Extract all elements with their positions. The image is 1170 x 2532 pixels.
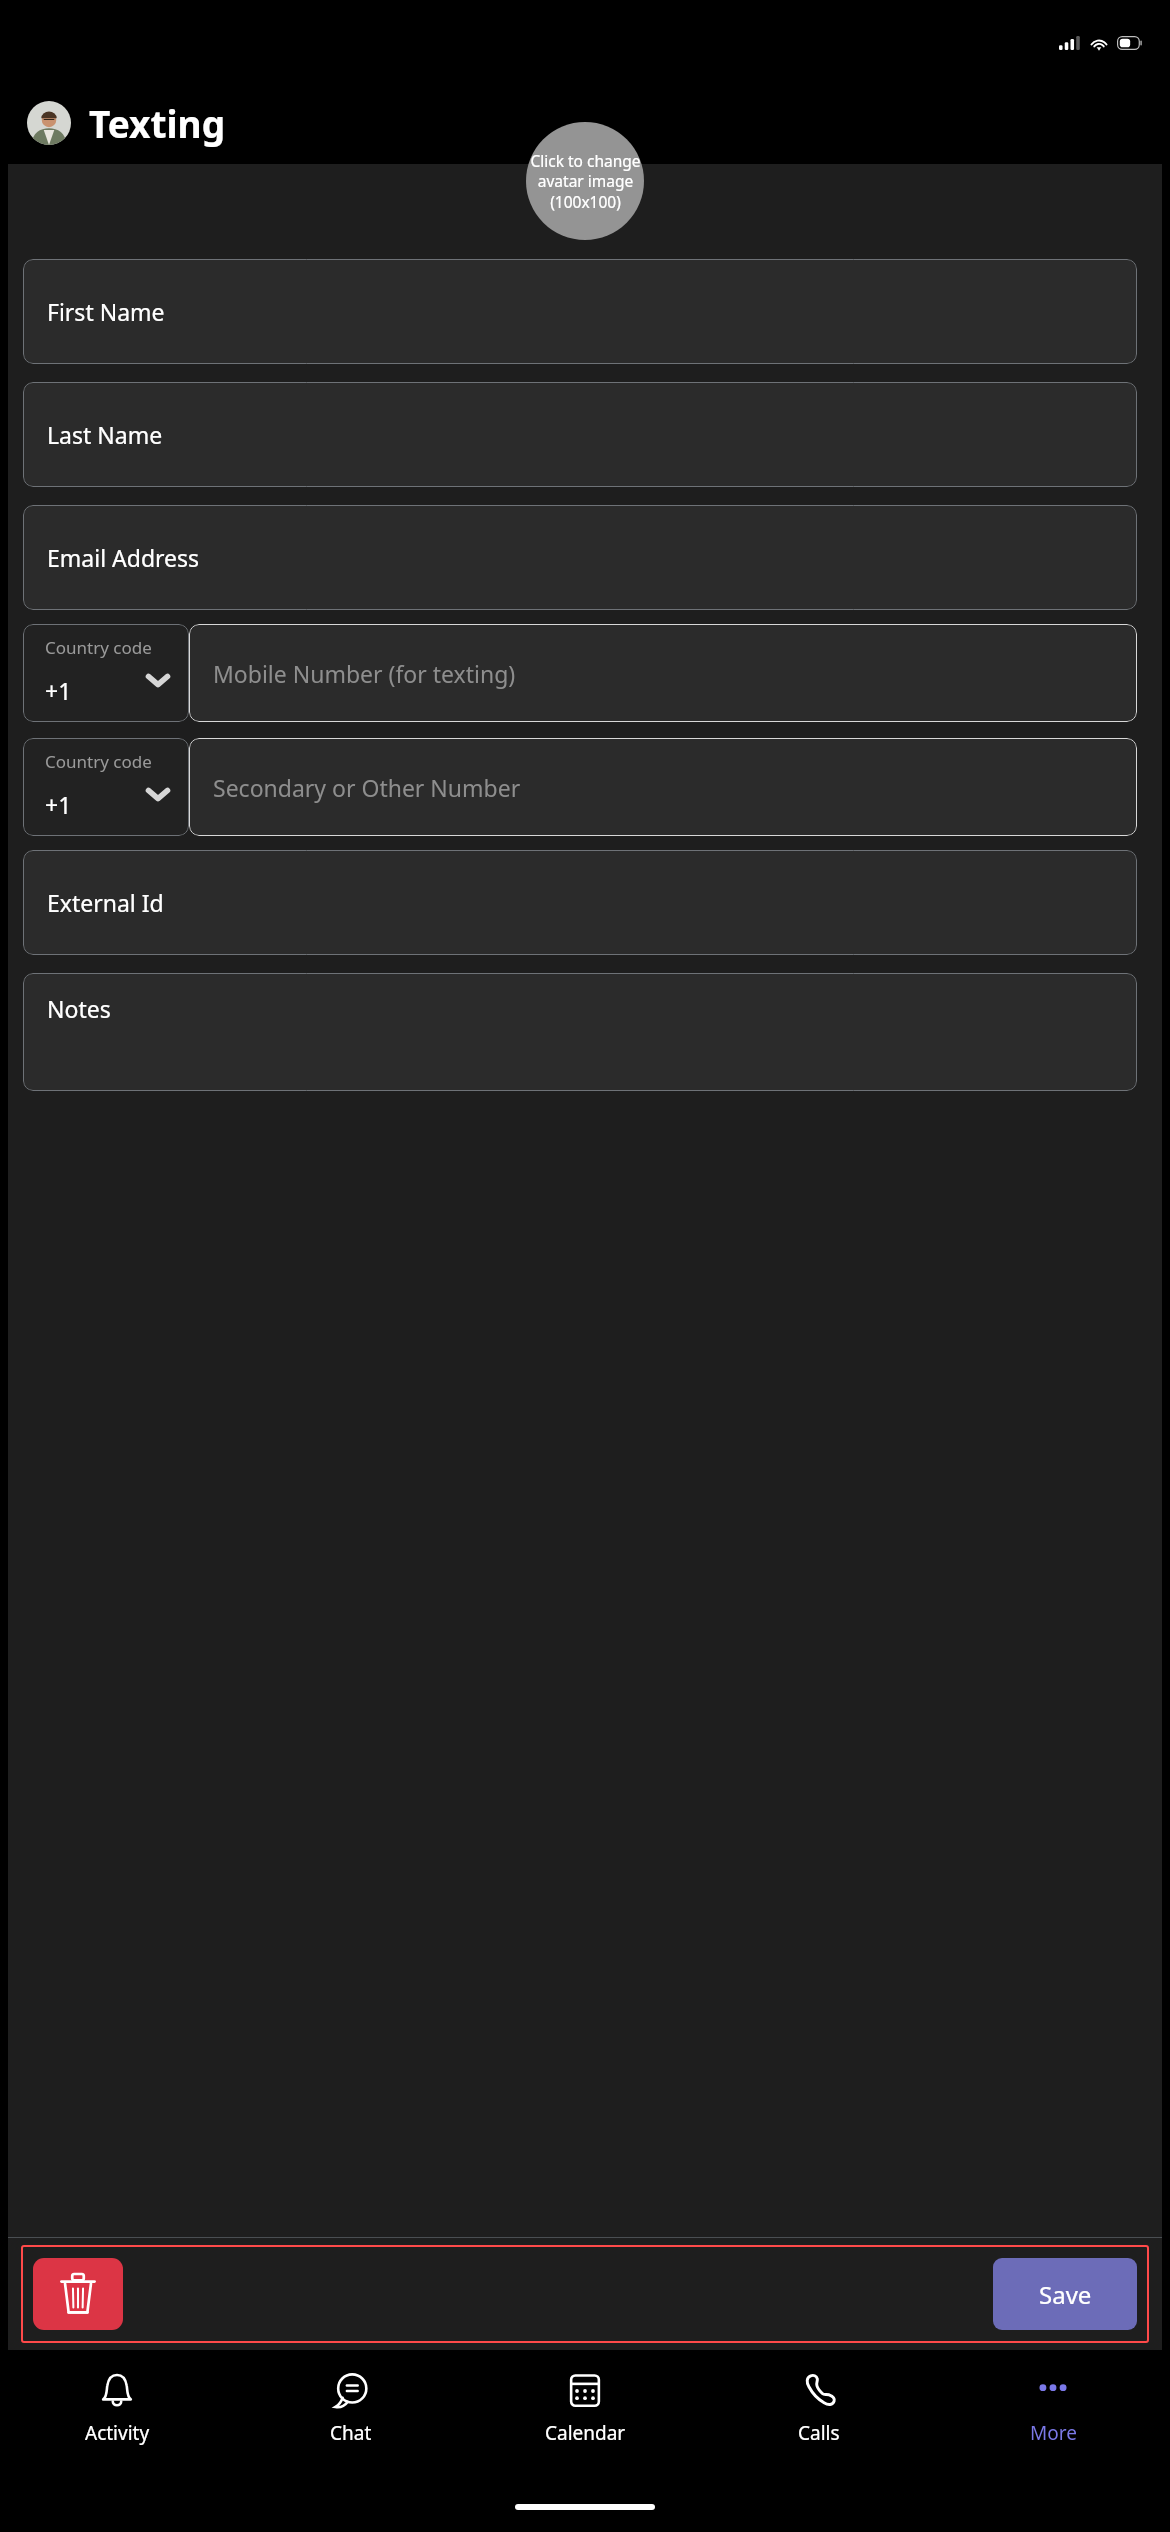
button[interactable]: First Name (23, 259, 1137, 364)
button[interactable]: Notes (23, 973, 1137, 1091)
button[interactable]: Profile (27, 101, 71, 145)
button[interactable]: External Id (23, 850, 1137, 955)
staticText: More (1030, 2420, 1077, 2446)
staticText: First Name (47, 296, 165, 327)
staticText: Click to change avatar image (100x100) (530, 150, 641, 213)
button[interactable]: Email Address (23, 505, 1137, 610)
staticText: Calls (798, 2420, 840, 2446)
button[interactable]: More (936, 2350, 1170, 2490)
button[interactable]: Last Name (23, 382, 1137, 487)
button[interactable]: Delete (33, 2258, 123, 2330)
button[interactable]: Mobile Number (for texting) (189, 624, 1137, 722)
staticText: Email Address (47, 542, 200, 573)
staticText: Country code (45, 750, 152, 773)
staticText: Calendar (545, 2420, 626, 2446)
staticText: Last Name (47, 419, 163, 450)
button[interactable]: Calendar (468, 2350, 702, 2490)
staticText: Chat (330, 2420, 372, 2446)
button[interactable]: Country code (23, 624, 189, 722)
staticText: +1 (45, 675, 72, 706)
button[interactable]: Save (993, 2258, 1137, 2330)
staticText: Texting (89, 98, 226, 148)
button[interactable]: Chat (234, 2350, 468, 2490)
button[interactable]: Country code (23, 738, 189, 836)
staticText: Country code (45, 636, 152, 659)
staticText: External Id (47, 887, 164, 918)
staticText: Secondary or Other Number (213, 772, 521, 803)
staticText: Notes (47, 993, 111, 1024)
staticText: Activity (85, 2420, 150, 2446)
button[interactable]: Activity (0, 2350, 234, 2490)
button[interactable]: Calls (702, 2350, 936, 2490)
staticText: +1 (45, 789, 72, 820)
button[interactable]: Secondary or Other Number (189, 738, 1137, 836)
staticText: Mobile Number (for texting) (213, 658, 516, 689)
button[interactable]: Click to change avatar image (100x100) (526, 122, 644, 240)
staticText: Save (1039, 2278, 1092, 2311)
